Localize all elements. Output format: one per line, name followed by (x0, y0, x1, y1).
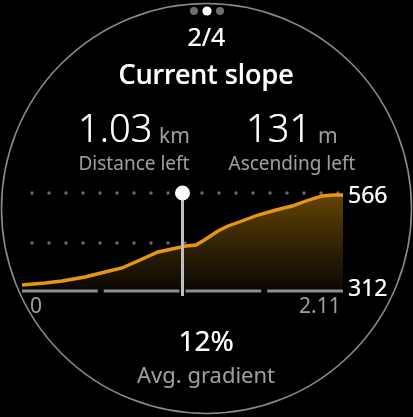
button[interactable]: Current slope page 2 of 4 (0, 0, 413, 417)
